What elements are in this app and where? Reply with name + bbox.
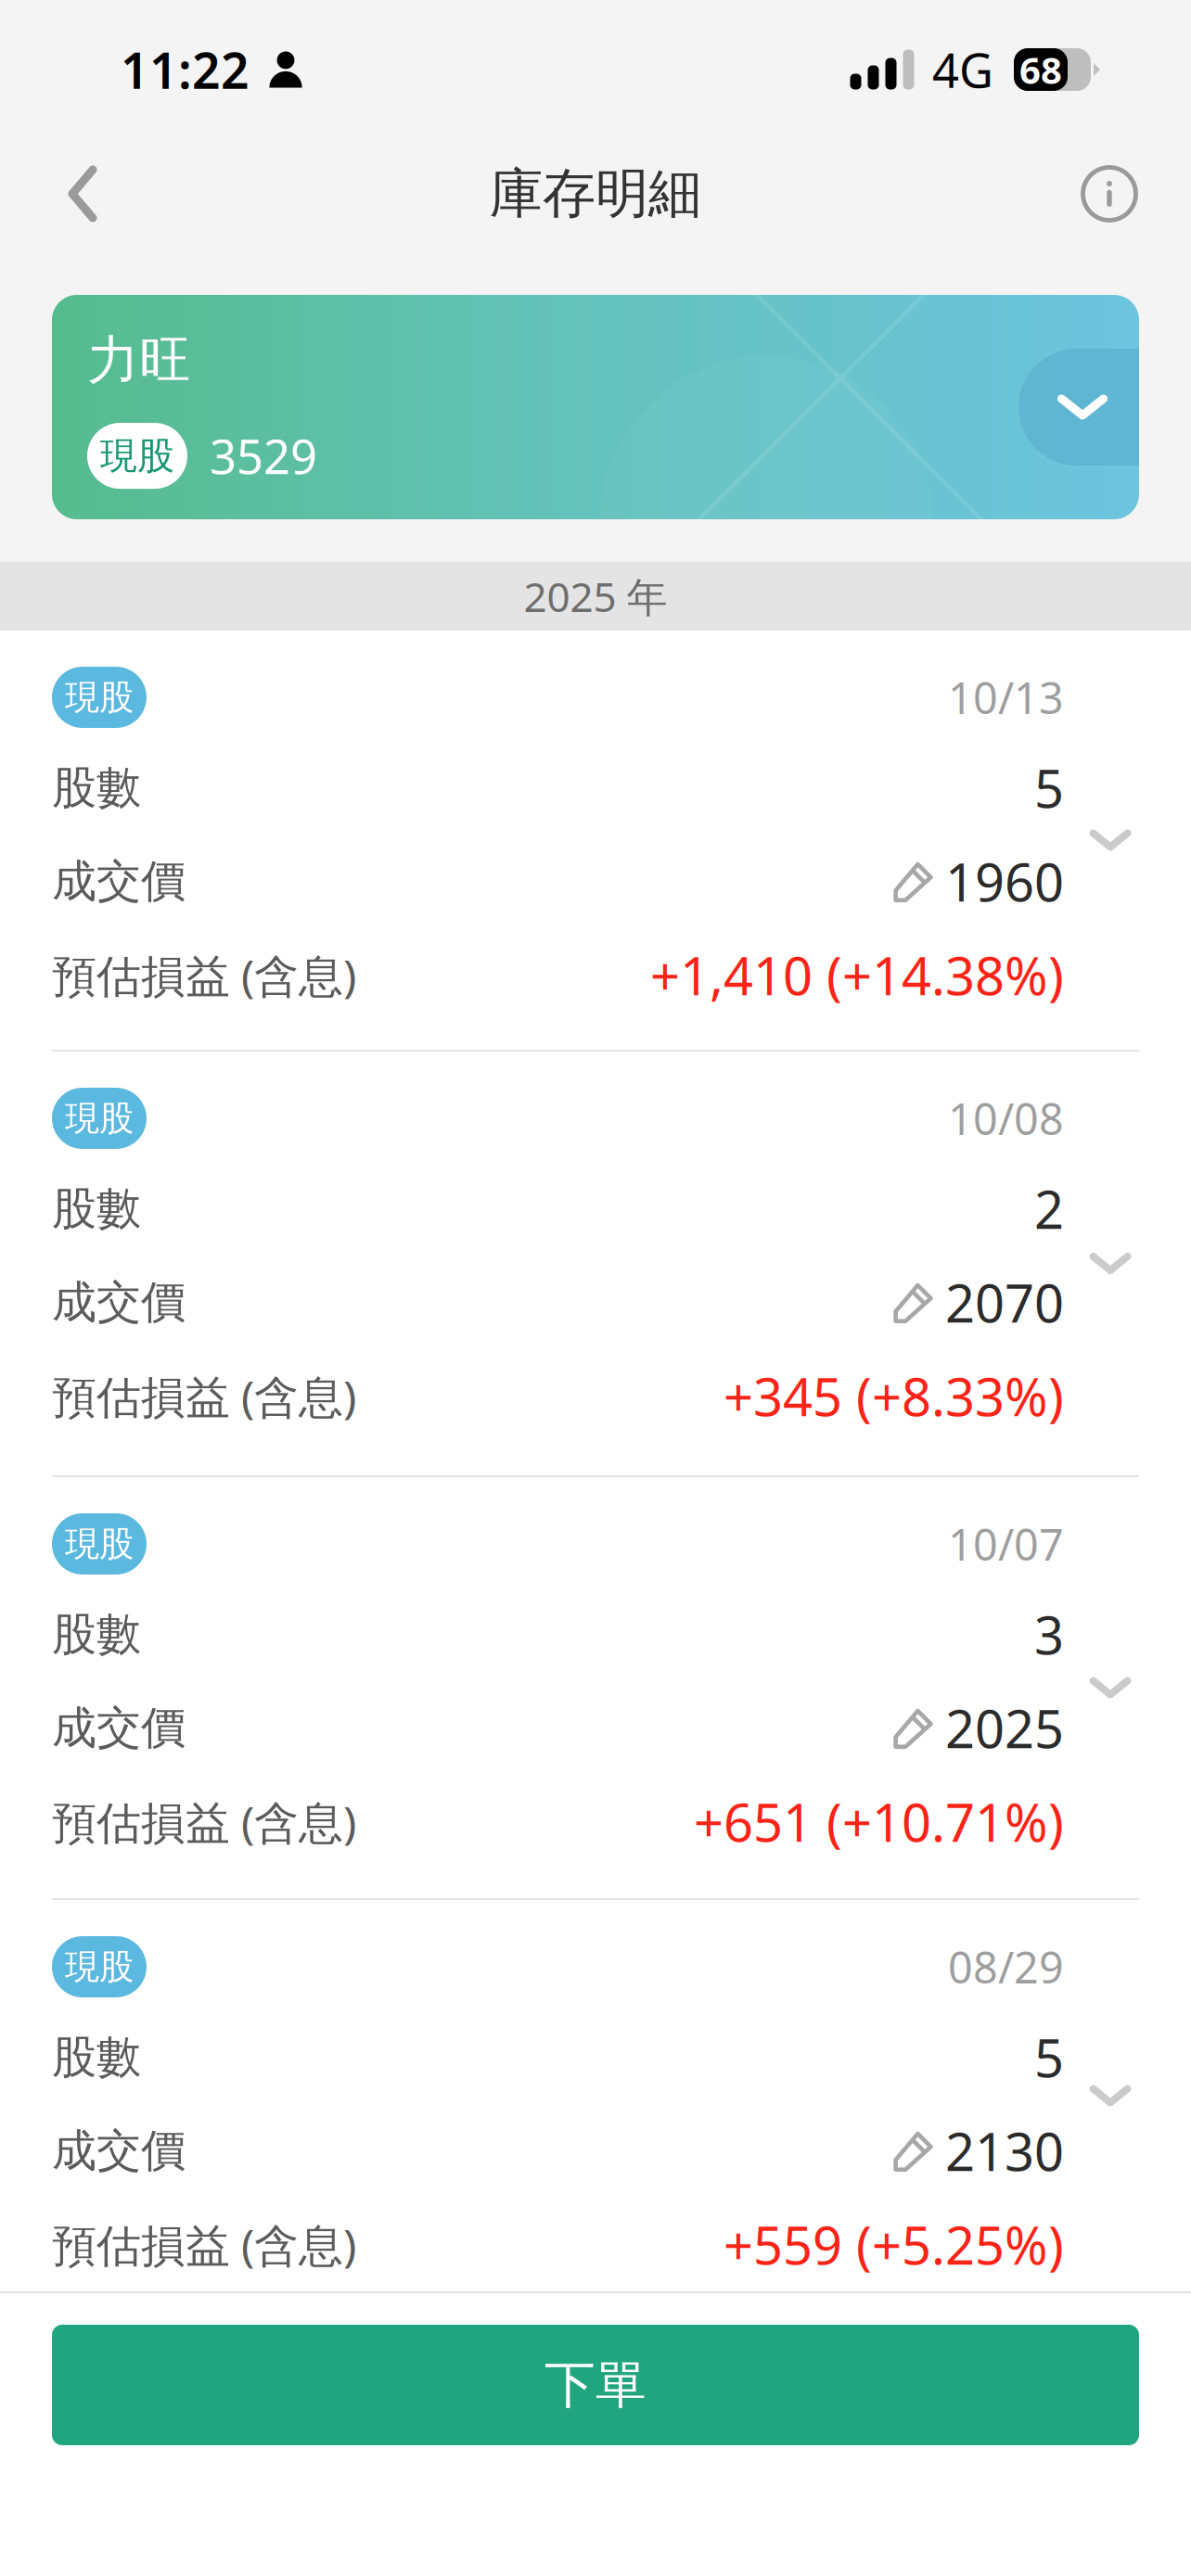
staticText: 5 xyxy=(1034,2023,1064,2092)
staticText: 股數 xyxy=(52,1181,141,1236)
staticText: 現股 xyxy=(65,1097,134,1140)
staticText: 股數 xyxy=(52,2030,141,2085)
button[interactable]: 下單 xyxy=(0,2293,1191,2445)
staticText: 3 xyxy=(1034,1600,1064,1669)
staticText: 5 xyxy=(1034,753,1064,822)
staticText: 現股 xyxy=(65,1523,134,1565)
staticText: 68 xyxy=(1019,45,1062,94)
staticText: 預估損益 (含息) xyxy=(52,945,356,1005)
staticText: 預估損益 (含息) xyxy=(52,2215,356,2274)
staticText: 08/29 xyxy=(948,1938,1064,1996)
button[interactable]: 現股 xyxy=(0,1052,1191,1475)
staticText: +1,410 (+14.38%) xyxy=(650,941,1064,1010)
staticText: 預估損益 (含息) xyxy=(52,1366,356,1426)
staticText: 1960 xyxy=(945,847,1064,916)
button[interactable]: 現股 xyxy=(0,631,1191,1050)
staticText: 3529 xyxy=(210,425,317,487)
button[interactable]: Back xyxy=(32,143,134,245)
staticText: 力旺 xyxy=(87,328,191,392)
button[interactable]: Info xyxy=(1058,143,1160,245)
button[interactable]: 現股 xyxy=(0,1477,1191,1898)
staticText: 成交價 xyxy=(52,1701,186,1755)
staticText: 下單 xyxy=(544,2354,647,2416)
staticText: 成交價 xyxy=(52,2123,186,2178)
staticText: 股數 xyxy=(52,1607,141,1662)
staticText: 現股 xyxy=(65,676,134,719)
button[interactable]: Expand xyxy=(1018,349,1139,465)
staticText: 10/07 xyxy=(948,1515,1064,1573)
staticText: +559 (+5.25%) xyxy=(724,2210,1064,2279)
staticText: 預估損益 (含息) xyxy=(52,1792,356,1851)
staticText: 庫存明細 xyxy=(490,161,701,226)
staticText: 成交價 xyxy=(52,1275,186,1330)
staticText: +651 (+10.71%) xyxy=(694,1787,1064,1856)
staticText: 2025 xyxy=(945,1694,1064,1762)
staticText: 2070 xyxy=(945,1268,1064,1337)
staticText: 2025 年 xyxy=(524,569,667,623)
staticText: 10/13 xyxy=(948,669,1064,726)
staticText: 10/08 xyxy=(948,1090,1064,1147)
staticText: 2130 xyxy=(945,2116,1064,2185)
staticText: +345 (+8.33%) xyxy=(724,1362,1064,1431)
staticText: 2 xyxy=(1034,1174,1064,1243)
staticText: 4G xyxy=(932,38,993,101)
staticText: 現股 xyxy=(100,433,174,479)
staticText: 現股 xyxy=(65,1946,134,1988)
button[interactable]: 現股 xyxy=(0,1900,1191,2291)
staticText: 成交價 xyxy=(52,854,186,909)
staticText: 11:22 xyxy=(121,37,250,102)
staticText: 股數 xyxy=(52,760,141,815)
